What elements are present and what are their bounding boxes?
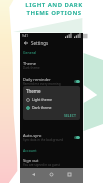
staticText: Light theme [32, 97, 52, 102]
staticText: Share anonymised data [23, 173, 68, 178]
staticText: 9:41 [22, 34, 28, 38]
button[interactable]: Auto-sync [20, 131, 83, 144]
button[interactable]: Back [29, 170, 38, 179]
staticText: Sync data in the background [23, 138, 64, 142]
staticText: LIGHT AND DARK [25, 1, 83, 9]
button[interactable]: Dark theme [26, 104, 78, 111]
button[interactable]: Recents [65, 170, 74, 179]
staticText: Remind me every morning [23, 82, 61, 86]
button[interactable]: SELECT [62, 112, 78, 119]
staticText: Sign out [23, 158, 39, 163]
button[interactable]: Usage statistics [20, 91, 83, 104]
staticText: SELECT [64, 113, 76, 118]
button[interactable]: Daily reminder [20, 75, 83, 88]
button[interactable]: Share anonymised data [20, 171, 83, 183]
button[interactable]: Sign out [20, 156, 83, 169]
button[interactable]: Light theme [26, 96, 78, 103]
staticText: Auto-sync [23, 133, 42, 138]
staticText: Settings [31, 40, 49, 46]
staticText: Daily reminder [23, 77, 51, 82]
button[interactable]: Back [22, 39, 29, 46]
button[interactable]: Theme [20, 59, 83, 72]
staticText: Help us improve the app [23, 98, 58, 102]
staticText: Haptic feedback [23, 109, 54, 114]
button[interactable]: Home [47, 170, 56, 179]
staticText: Dark theme [23, 66, 40, 70]
staticText: Theme [23, 61, 36, 66]
staticText: Account [23, 148, 37, 153]
staticText: Theme [26, 88, 41, 94]
staticText: Dark theme [32, 105, 52, 110]
staticText: General [23, 50, 37, 55]
staticText: THEME OPTIONS [26, 9, 82, 17]
button[interactable]: Haptic feedback [20, 107, 83, 120]
staticText: You are signed in as guest [23, 163, 60, 167]
